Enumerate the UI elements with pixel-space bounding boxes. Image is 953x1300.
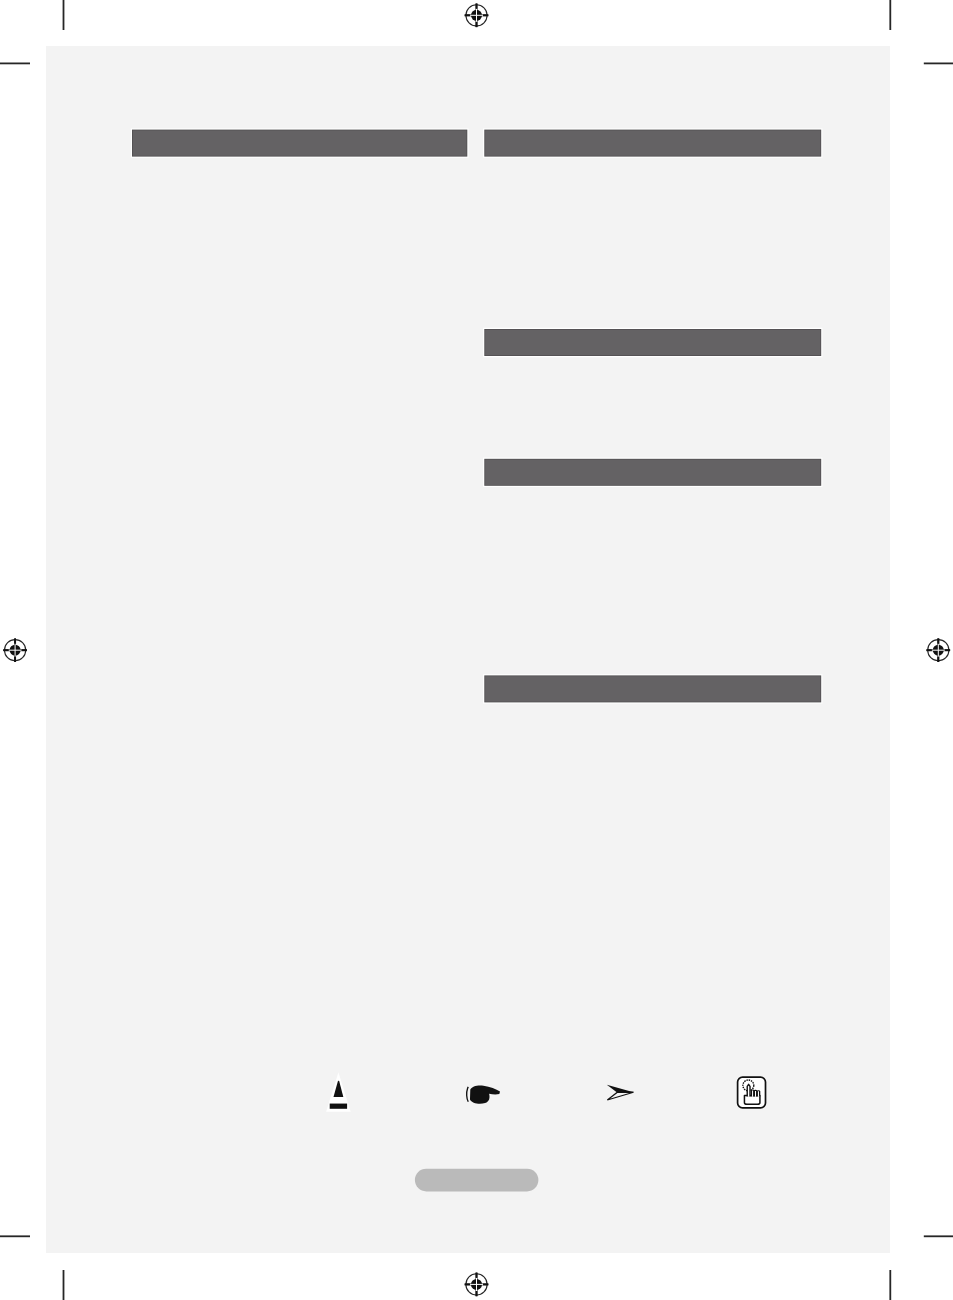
button[interactable]: Tap gesture bbox=[735, 1074, 768, 1110]
button[interactable]: Send bbox=[603, 1080, 638, 1105]
button[interactable]: Pointer bbox=[464, 1080, 504, 1107]
button[interactable]: Warning bbox=[322, 1068, 355, 1115]
button[interactable]: Continue bbox=[413, 1167, 540, 1194]
